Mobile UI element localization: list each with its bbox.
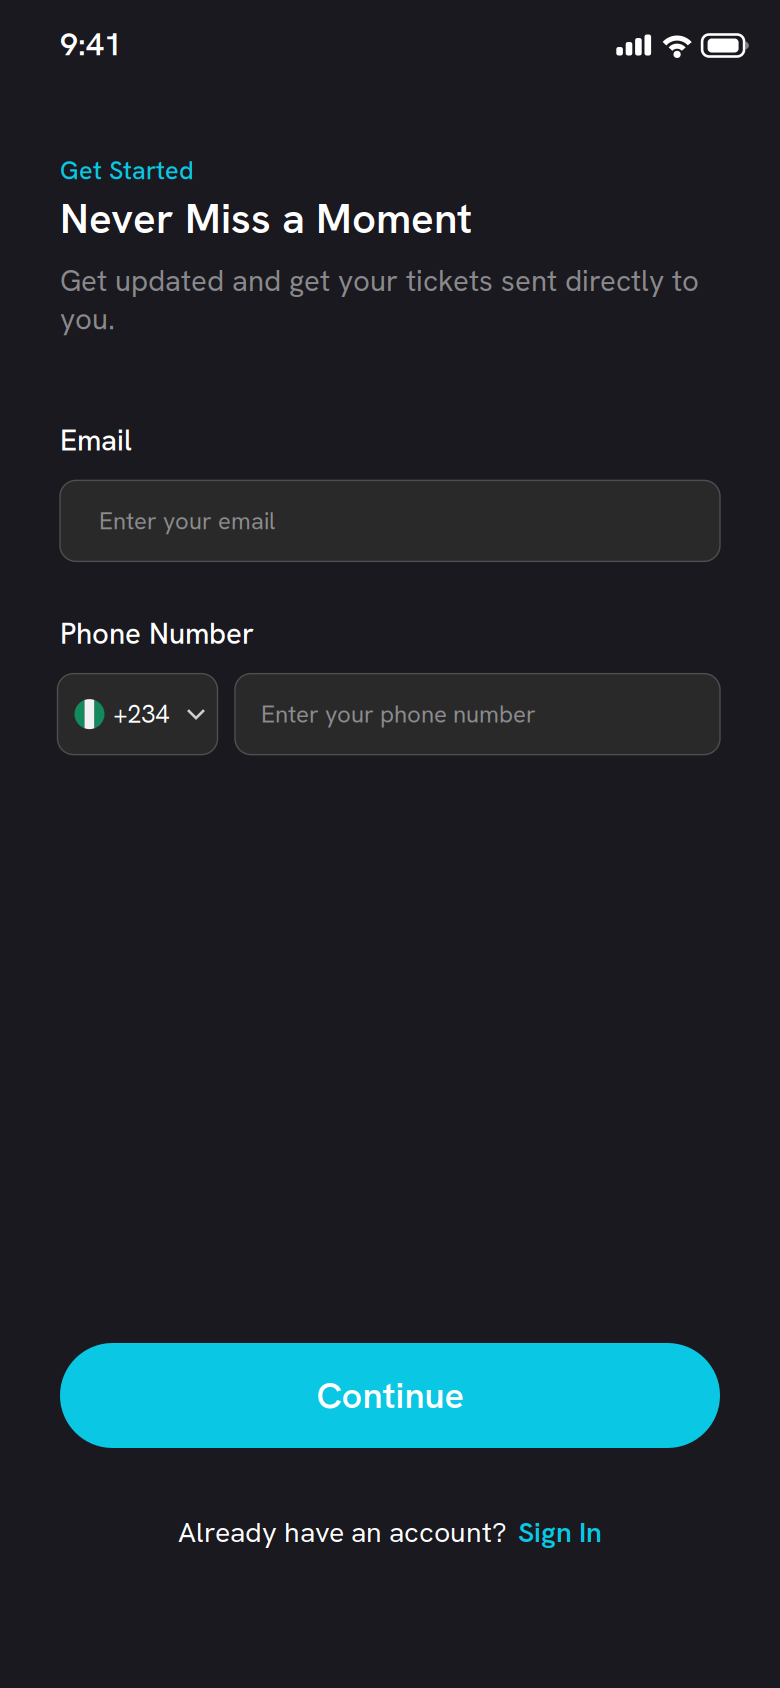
staticText: Phone Number — [60, 614, 254, 653]
staticText: Email — [60, 421, 132, 459]
button[interactable]: Already have an account? — [0, 1512, 780, 1552]
staticText: +234 — [113, 698, 169, 730]
staticText: Get Started — [60, 154, 194, 187]
staticText: 9:41 — [60, 23, 122, 65]
button[interactable]: Continue — [60, 1343, 720, 1448]
staticText: Enter your phone number — [261, 698, 536, 730]
staticText: Get updated and get your tickets sent di… — [60, 262, 699, 338]
staticText: Enter your email — [99, 505, 275, 536]
button[interactable]: +234 — [60, 674, 215, 755]
staticText: Continue — [316, 1372, 463, 1419]
staticText: Sign In — [518, 1513, 602, 1550]
staticText: Already have an account? — [178, 1513, 507, 1550]
staticText: Never Miss a Moment — [60, 191, 472, 246]
